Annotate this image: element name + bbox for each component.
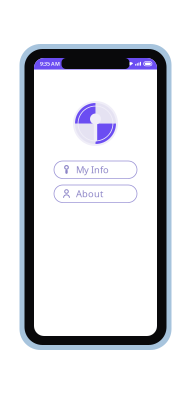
staticText: My Info <box>76 164 109 176</box>
button[interactable]: My Info <box>54 161 137 178</box>
staticText: 9:35 AM <box>40 60 60 67</box>
staticText: About <box>76 188 103 200</box>
button[interactable]: About <box>54 185 137 202</box>
